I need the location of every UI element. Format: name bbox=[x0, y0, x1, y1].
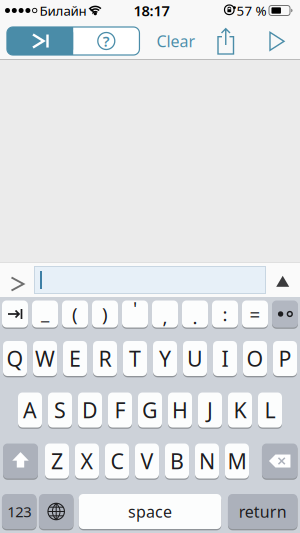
staticText: R bbox=[98, 344, 111, 373]
staticText: ( bbox=[72, 302, 78, 326]
staticText: T bbox=[129, 344, 141, 373]
staticText: ' bbox=[133, 296, 137, 320]
button[interactable] bbox=[262, 443, 297, 478]
button[interactable]: U bbox=[183, 341, 207, 376]
staticText: H bbox=[172, 396, 188, 424]
staticText: X bbox=[80, 447, 93, 475]
button[interactable]: return bbox=[228, 494, 297, 529]
staticText: K bbox=[233, 396, 246, 424]
staticText: W bbox=[35, 344, 55, 373]
button[interactable]: , bbox=[152, 300, 178, 327]
staticText: _ bbox=[41, 300, 49, 324]
button[interactable]: O bbox=[243, 341, 267, 376]
button[interactable]: L bbox=[258, 392, 282, 427]
staticText: O bbox=[246, 344, 263, 373]
staticText: return bbox=[239, 501, 287, 522]
staticText: ? bbox=[103, 31, 110, 51]
staticText: Y bbox=[159, 344, 171, 373]
staticText: B bbox=[170, 447, 184, 475]
staticText: L bbox=[264, 396, 275, 424]
button[interactable] bbox=[39, 494, 73, 529]
button[interactable]: R bbox=[93, 341, 117, 376]
button[interactable]: ( bbox=[62, 300, 88, 327]
staticText: = bbox=[249, 302, 260, 326]
staticText: C bbox=[110, 447, 123, 475]
button[interactable]: E bbox=[63, 341, 87, 376]
staticText: J bbox=[207, 396, 213, 424]
button[interactable] bbox=[2, 300, 28, 327]
button[interactable]: Clear bbox=[154, 27, 198, 55]
staticText: P bbox=[278, 344, 291, 373]
button[interactable]: 123 bbox=[2, 494, 36, 529]
button[interactable]: W bbox=[33, 341, 57, 376]
button[interactable]: ' bbox=[122, 300, 148, 327]
button[interactable]: D bbox=[78, 392, 102, 427]
button[interactable]: _ bbox=[32, 300, 58, 327]
staticText: U bbox=[187, 344, 203, 373]
staticText: I bbox=[221, 344, 228, 373]
staticText: S bbox=[54, 396, 66, 424]
button[interactable]: ? bbox=[73, 27, 139, 55]
staticText: Q bbox=[6, 344, 23, 373]
button[interactable]: ) bbox=[92, 300, 118, 327]
button[interactable]: A bbox=[18, 392, 42, 427]
staticText: M bbox=[227, 447, 246, 475]
button[interactable]: X bbox=[75, 443, 99, 478]
staticText: , bbox=[162, 305, 167, 329]
button[interactable]: C bbox=[105, 443, 129, 478]
staticText: D bbox=[82, 396, 98, 424]
button[interactable]: B bbox=[165, 443, 189, 478]
staticText: A bbox=[23, 396, 37, 424]
button[interactable]: N bbox=[195, 443, 219, 478]
button[interactable]: P bbox=[273, 341, 297, 376]
staticText: Clear bbox=[156, 30, 195, 52]
button[interactable]: Q bbox=[3, 341, 27, 376]
button[interactable]: space bbox=[79, 494, 221, 529]
button[interactable]: V bbox=[135, 443, 159, 478]
button[interactable]: Z bbox=[45, 443, 69, 478]
staticText: : bbox=[222, 302, 227, 326]
button[interactable]: . bbox=[182, 300, 208, 327]
button[interactable] bbox=[272, 300, 298, 327]
button[interactable]: J bbox=[198, 392, 222, 427]
staticText: 18:17 bbox=[133, 1, 169, 20]
button[interactable]: I bbox=[213, 341, 237, 376]
button[interactable] bbox=[7, 27, 73, 55]
staticText: G bbox=[142, 396, 158, 424]
button[interactable] bbox=[275, 275, 290, 288]
button[interactable]: F bbox=[108, 392, 132, 427]
staticText: 57 % bbox=[236, 2, 266, 19]
button[interactable]: Y bbox=[153, 341, 177, 376]
button[interactable]: H bbox=[168, 392, 192, 427]
staticText: V bbox=[140, 447, 153, 475]
button[interactable]: K bbox=[228, 392, 252, 427]
button[interactable] bbox=[3, 443, 38, 478]
button[interactable] bbox=[204, 27, 248, 55]
button[interactable]: T bbox=[123, 341, 147, 376]
button[interactable]: = bbox=[242, 300, 268, 327]
button[interactable]: G bbox=[138, 392, 162, 427]
staticText: Билайн bbox=[39, 2, 86, 19]
button[interactable]: M bbox=[225, 443, 249, 478]
staticText: N bbox=[199, 447, 215, 475]
staticText: F bbox=[114, 396, 125, 424]
staticText: space bbox=[128, 501, 172, 522]
staticText: E bbox=[69, 344, 81, 373]
staticText: ) bbox=[102, 302, 108, 326]
button[interactable]: S bbox=[48, 392, 72, 427]
button[interactable]: : bbox=[212, 300, 238, 327]
staticText: . bbox=[192, 305, 197, 329]
button[interactable] bbox=[255, 27, 299, 55]
staticText: Z bbox=[51, 447, 63, 475]
staticText: 123 bbox=[7, 502, 31, 521]
